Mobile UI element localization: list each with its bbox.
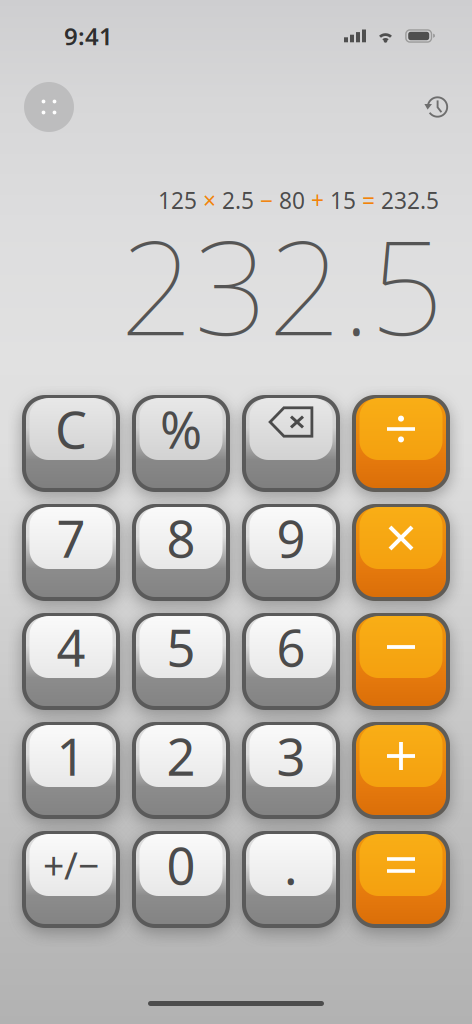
staticText: .	[284, 831, 298, 899]
button[interactable]: Equals	[352, 831, 450, 928]
button[interactable]: Add	[352, 722, 450, 819]
button[interactable]: History	[415, 85, 459, 129]
staticText: 8	[166, 504, 195, 572]
button[interactable]: Divide	[352, 395, 450, 492]
button[interactable]: 8	[132, 504, 230, 601]
staticText: =	[356, 185, 381, 215]
staticText: %	[160, 395, 202, 463]
staticText: 15	[330, 185, 356, 215]
button[interactable]: 0	[132, 831, 230, 928]
staticText: −	[254, 185, 279, 215]
staticText: +	[305, 185, 330, 215]
staticText: 4	[56, 613, 85, 681]
staticText: 2	[166, 722, 195, 790]
button[interactable]: Subtract	[352, 613, 450, 710]
button[interactable]: Multiply	[352, 504, 450, 601]
staticText: 0	[166, 831, 195, 899]
button[interactable]: Calculator modes	[24, 82, 74, 132]
staticText: 2.5	[222, 185, 254, 215]
button[interactable]: 6	[242, 613, 340, 710]
staticText: +/−	[43, 840, 99, 890]
staticText: 1	[56, 722, 85, 790]
staticText: 232.5	[381, 185, 439, 215]
staticText: ×	[197, 185, 222, 215]
button[interactable]: +/−	[22, 831, 120, 928]
staticText: 80	[279, 185, 305, 215]
button[interactable]: 9	[242, 504, 340, 601]
staticText: 232.5	[120, 199, 444, 371]
button[interactable]: Delete	[242, 395, 340, 492]
button[interactable]: 3	[242, 722, 340, 819]
staticText: 9:41	[64, 20, 113, 52]
staticText: 125	[158, 185, 197, 215]
button[interactable]: 4	[22, 613, 120, 710]
staticText: 3	[276, 722, 305, 790]
button[interactable]: C	[22, 395, 120, 492]
button[interactable]: .	[242, 831, 340, 928]
staticText: 7	[56, 504, 85, 572]
staticText: C	[55, 395, 87, 463]
staticText: 6	[276, 613, 305, 681]
button[interactable]: 5	[132, 613, 230, 710]
button[interactable]: 7	[22, 504, 120, 601]
staticText: 9	[276, 504, 305, 572]
staticText: 5	[166, 613, 195, 681]
button[interactable]: %	[132, 395, 230, 492]
button[interactable]: 1	[22, 722, 120, 819]
button[interactable]: 2	[132, 722, 230, 819]
